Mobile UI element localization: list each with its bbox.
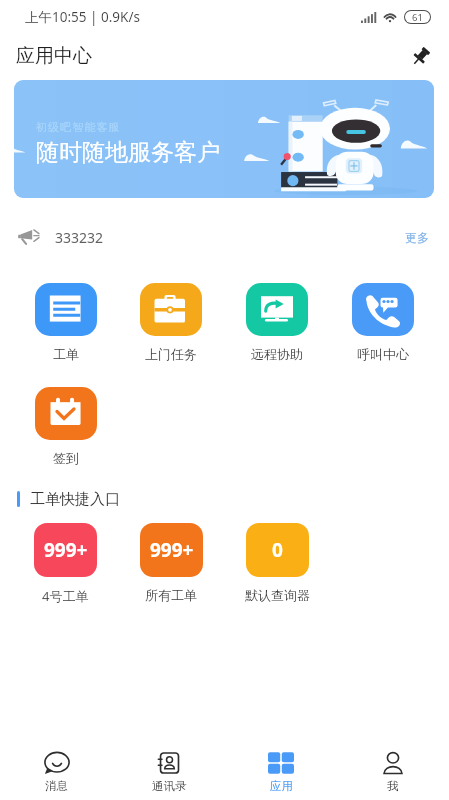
button[interactable]: 我 bbox=[337, 742, 449, 800]
button[interactable]: 通讯录 bbox=[113, 742, 225, 800]
button[interactable]: 消息 bbox=[0, 742, 113, 800]
staticText: 61 bbox=[412, 11, 423, 23]
staticText: 所有工单 bbox=[145, 587, 197, 603]
button[interactable]: Pin bbox=[403, 39, 437, 73]
staticText: 333232 bbox=[55, 228, 104, 247]
button[interactable]: 呼叫中心 bbox=[330, 283, 436, 362]
button[interactable]: 上门任务 bbox=[118, 283, 224, 362]
staticText: 工单快捷入口 bbox=[30, 490, 120, 509]
staticText: 0 bbox=[272, 537, 283, 563]
button[interactable]: 0 bbox=[224, 523, 330, 603]
staticText: 应用中心 bbox=[16, 44, 92, 68]
button[interactable]: 999+ bbox=[13, 523, 118, 605]
button[interactable]: 应用 bbox=[225, 742, 337, 800]
staticText: 呼叫中心 bbox=[357, 346, 409, 362]
staticText: 远程协助 bbox=[251, 346, 303, 362]
button[interactable]: 初级吧智能客服 bbox=[14, 80, 434, 198]
button[interactable]: 签到 bbox=[13, 387, 119, 466]
staticText: 消息 bbox=[45, 779, 68, 793]
staticText: 上午10:55 | 0.9K/s bbox=[25, 8, 140, 26]
staticText: 上门任务 bbox=[145, 346, 197, 362]
staticText: 我 bbox=[387, 779, 399, 793]
staticText: 通讯录 bbox=[152, 779, 187, 793]
button[interactable]: 999+ bbox=[118, 523, 224, 603]
staticText: 999+ bbox=[150, 537, 194, 563]
staticText: 默认查询器 bbox=[245, 587, 310, 603]
button[interactable]: 更多 bbox=[402, 224, 432, 251]
staticText: 随时随地服务客户 bbox=[36, 138, 220, 167]
staticText: 应用 bbox=[270, 779, 293, 793]
button[interactable]: 远程协助 bbox=[224, 283, 330, 362]
staticText: 初级吧智能客服 bbox=[36, 120, 121, 134]
staticText: 工单 bbox=[53, 346, 79, 362]
staticText: 更多 bbox=[405, 230, 429, 245]
staticText: 签到 bbox=[53, 450, 79, 466]
staticText: 4号工单 bbox=[42, 587, 89, 605]
staticText: 999+ bbox=[44, 537, 88, 563]
button[interactable]: 工单 bbox=[13, 283, 118, 362]
